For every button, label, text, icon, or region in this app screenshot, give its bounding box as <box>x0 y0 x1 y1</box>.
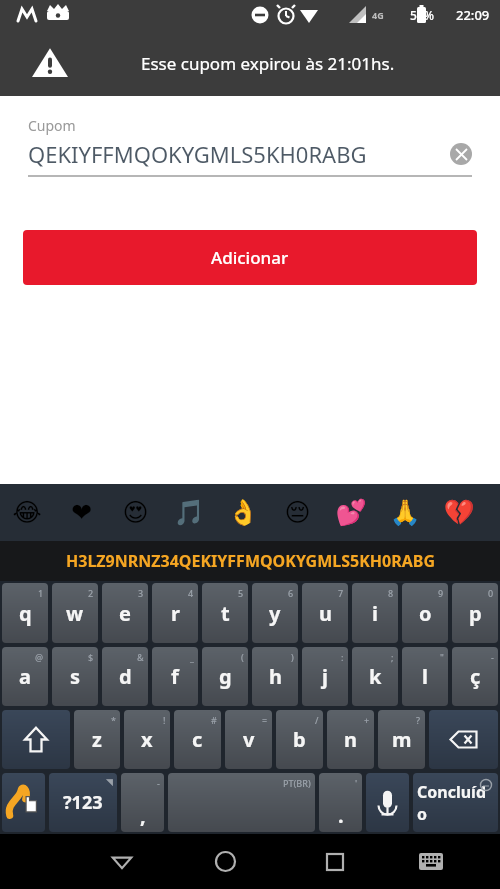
staticText: g <box>219 663 232 690</box>
button[interactable]: 0 <box>452 583 498 643</box>
staticText: 4 <box>188 587 194 599</box>
button[interactable]: Done <box>413 773 498 832</box>
button[interactable]: Hide keyboard <box>390 834 471 889</box>
button[interactable]: ( <box>202 647 248 706</box>
button[interactable]: Clear <box>450 143 472 165</box>
button[interactable]: + <box>327 710 374 769</box>
staticText: v <box>243 726 255 753</box>
button[interactable]: 🎵 <box>162 484 216 541</box>
button[interactable]: 9 <box>402 583 448 643</box>
button[interactable]: Home <box>170 834 280 889</box>
button[interactable]: Adicionar <box>23 230 477 285</box>
button[interactable]: 4 <box>152 583 198 643</box>
button[interactable]: Back <box>74 834 170 889</box>
button[interactable]: # <box>174 710 221 769</box>
staticText: - <box>491 651 494 663</box>
staticText: o <box>419 600 432 627</box>
button[interactable]: = <box>225 710 272 769</box>
button[interactable]: 2 <box>52 583 98 643</box>
staticText: ? <box>416 714 421 726</box>
button[interactable]: ! <box>124 710 170 769</box>
button[interactable]: 3 <box>102 583 148 643</box>
staticText: # <box>211 714 217 726</box>
button[interactable]: 1 <box>2 583 48 643</box>
staticText: ( <box>241 651 244 663</box>
staticText: ç <box>470 663 481 690</box>
staticText: j <box>322 663 328 690</box>
button[interactable]: $ <box>52 647 98 706</box>
staticText: " <box>440 651 444 663</box>
button[interactable]: Swipe input <box>2 773 45 832</box>
button[interactable]: _ <box>152 647 198 706</box>
staticText: Esse cupom expirou às 21:01hs. <box>141 52 395 75</box>
staticText: 9 <box>438 587 444 599</box>
button[interactable]: Period <box>319 773 362 832</box>
staticText: e <box>119 600 131 627</box>
staticText: q <box>19 600 32 627</box>
staticText: m <box>392 726 412 753</box>
staticText: x <box>141 726 153 753</box>
staticText: + <box>364 714 370 726</box>
staticText: d <box>119 663 132 690</box>
button[interactable]: Shift <box>2 710 70 769</box>
staticText: y <box>269 600 281 627</box>
staticText: * <box>111 714 116 726</box>
button[interactable]: 😔 <box>270 484 324 541</box>
staticText: @ <box>35 651 44 663</box>
staticText: 57% <box>410 7 434 23</box>
staticText: / <box>315 714 319 726</box>
button[interactable]: 8 <box>352 583 398 643</box>
staticText: s <box>70 663 81 690</box>
button[interactable]: " <box>402 647 448 706</box>
staticText: w <box>66 600 84 627</box>
button[interactable]: @ <box>2 647 48 706</box>
staticText: 2 <box>88 587 94 599</box>
staticText: ❤️ <box>71 498 92 527</box>
button[interactable]: 🙏 <box>378 484 432 541</box>
button[interactable]: * <box>74 710 120 769</box>
button[interactable]: H3LZ9NRNZ34QEKIYFFMQOKYGMLS5KH0RABG <box>0 541 500 581</box>
button[interactable]: / <box>276 710 323 769</box>
staticText: ) <box>291 651 294 663</box>
button[interactable]: & <box>102 647 148 706</box>
button[interactable]: 7 <box>302 583 348 643</box>
staticText: 👌 <box>227 498 259 527</box>
button[interactable]: 👌 <box>216 484 270 541</box>
button[interactable]: Voice input <box>366 773 409 832</box>
staticText: : <box>341 651 344 663</box>
staticText: 😍 <box>122 498 149 527</box>
button[interactable]: 6 <box>252 583 298 643</box>
button[interactable]: Symbols <box>49 773 117 832</box>
button[interactable]: ❤️ <box>54 484 108 541</box>
button[interactable]: ) <box>252 647 298 706</box>
button[interactable]: Backspace <box>429 710 498 769</box>
staticText: . <box>338 802 344 829</box>
button[interactable]: - <box>452 647 498 706</box>
button[interactable]: 💕 <box>324 484 378 541</box>
button[interactable]: ; <box>352 647 398 706</box>
staticText: , <box>140 802 146 829</box>
staticText: & <box>137 651 144 663</box>
staticText: f <box>171 663 179 690</box>
staticText: 1 <box>38 587 44 599</box>
staticText: ! <box>163 714 166 726</box>
staticText: a <box>19 663 31 690</box>
button[interactable]: ? <box>378 710 425 769</box>
button[interactable]: 💔 <box>432 484 486 541</box>
staticText: ?123 <box>63 790 103 815</box>
staticText: _ <box>190 651 194 663</box>
button[interactable]: Space <box>168 773 315 832</box>
staticText: PT(BR) <box>283 777 311 789</box>
button[interactable]: : <box>302 647 348 706</box>
staticText: = <box>262 714 268 726</box>
staticText: $ <box>88 651 94 663</box>
staticText: p <box>469 600 482 627</box>
button[interactable]: Comma <box>121 773 164 832</box>
button[interactable]: 😍 <box>108 484 162 541</box>
button[interactable]: 😂 <box>0 484 54 541</box>
button[interactable]: Recents <box>280 834 390 889</box>
staticText: 💕 <box>335 498 367 527</box>
staticText: - <box>157 777 160 789</box>
button[interactable]: 5 <box>202 583 248 643</box>
button[interactable]: Cupom <box>28 116 472 177</box>
